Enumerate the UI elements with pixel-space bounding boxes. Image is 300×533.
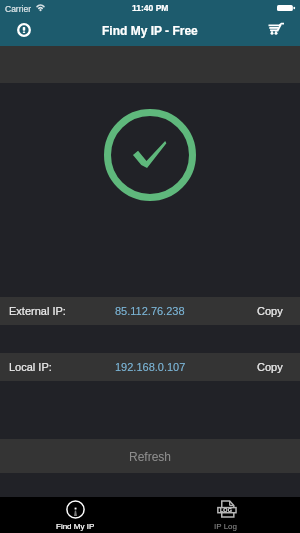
staticText: Find My IP - Free (102, 24, 198, 37)
button[interactable]: Info (12, 18, 36, 42)
staticText: Local IP: (9, 361, 52, 373)
button[interactable]: Find My IP (0, 497, 150, 533)
staticText: Copy (257, 305, 283, 317)
button[interactable]: Local IP: (0, 353, 300, 381)
staticText: 11:40 PM (132, 3, 169, 12)
staticText: External IP: (9, 305, 66, 317)
staticText: Copy (257, 361, 283, 373)
staticText: Carrier (5, 4, 31, 13)
button[interactable]: LOG (150, 497, 300, 533)
staticText: 192.168.0.107 (115, 361, 186, 373)
button[interactable]: Refresh (0, 439, 300, 473)
staticText: LOG (220, 507, 232, 513)
button[interactable]: Shopping cart (264, 17, 288, 41)
staticText: Refresh (129, 450, 172, 463)
staticText: IP Log (214, 522, 237, 531)
button[interactable]: External IP: (0, 297, 300, 325)
staticText: Find My IP (56, 522, 95, 531)
staticText: 85.112.76.238 (115, 305, 185, 317)
